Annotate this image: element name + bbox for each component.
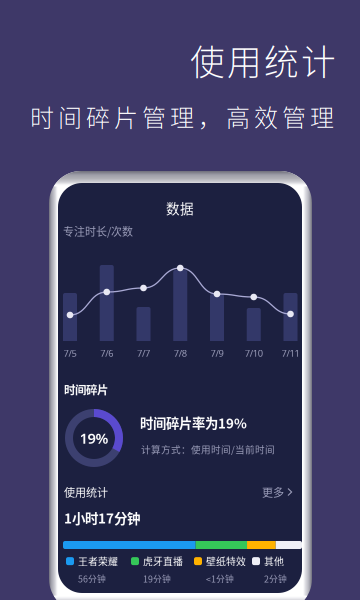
staticText: 7/10 [245,347,263,359]
button[interactable]: 更多 [258,482,297,502]
staticText: 7/9 [210,347,223,359]
staticText: 7/6 [100,347,113,359]
staticText: 时间碎片管理，高效管理 [30,99,334,134]
staticText: 数据 [166,198,194,218]
staticText: 19% [79,428,108,448]
staticText: 使用统计 [190,35,336,85]
staticText: 王者荣耀 [78,554,118,568]
staticText: <1分钟 [206,572,234,585]
staticText: 专注时长/次数 [63,223,133,239]
staticText: 计算方式：使用时间/当前时间 [141,442,275,456]
staticText: 1小时17分钟 [64,508,140,527]
staticText: 时间碎片率为19% [140,413,247,432]
staticText: 时间碎片 [64,381,108,398]
staticText: 2分钟 [264,572,287,585]
staticText: 7/5 [63,347,76,359]
staticText: 虎牙直播 [143,554,183,568]
staticText: 更多 [262,484,284,500]
staticText: 7/11 [281,347,299,359]
staticText: 其他 [264,554,284,568]
staticText: 使用统计 [64,484,108,500]
staticText: 56分钟 [78,572,106,585]
staticText: 壁纸特效 [206,554,246,568]
staticText: 7/8 [174,347,187,359]
staticText: 19分钟 [143,572,171,585]
staticText: 7/7 [137,347,150,359]
